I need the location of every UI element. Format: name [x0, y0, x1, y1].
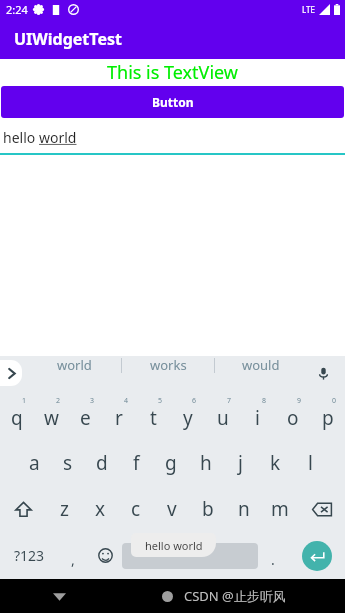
- button[interactable]: g: [153, 439, 188, 486]
- staticText: world: [57, 356, 92, 374]
- button[interactable]: 8: [240, 393, 275, 439]
- staticText: s: [63, 450, 73, 476]
- staticText: k: [270, 450, 281, 476]
- button[interactable]: f: [119, 439, 153, 486]
- staticText: Button: [152, 94, 194, 110]
- button[interactable]: 2: [34, 393, 68, 439]
- staticText: z: [60, 496, 69, 522]
- button[interactable]: world: [28, 356, 121, 374]
- staticText: 5: [158, 396, 163, 406]
- button[interactable]: z: [46, 486, 82, 532]
- staticText: i: [255, 405, 260, 431]
- staticText: f: [133, 450, 140, 476]
- staticText: x: [95, 496, 106, 522]
- button[interactable]: 1: [0, 393, 34, 439]
- staticText: n: [238, 496, 250, 522]
- staticText: d: [96, 450, 108, 476]
- button[interactable]: 9: [275, 393, 310, 439]
- button[interactable]: .: [258, 532, 288, 579]
- staticText: e: [80, 405, 91, 431]
- button[interactable]: h: [188, 439, 223, 486]
- staticText: 7: [227, 396, 232, 406]
- staticText: q: [11, 405, 23, 431]
- staticText: r: [115, 405, 123, 431]
- staticText: 2:24: [6, 2, 28, 17]
- staticText: a: [29, 450, 40, 476]
- button[interactable]: 7: [205, 393, 240, 439]
- button[interactable]: x: [82, 486, 118, 532]
- staticText: .: [271, 550, 275, 569]
- button[interactable]: j: [223, 439, 258, 486]
- button[interactable]: l: [293, 439, 328, 486]
- button[interactable]: s: [51, 439, 85, 486]
- button[interactable]: Backspace: [298, 486, 345, 532]
- staticText: ,: [71, 550, 75, 569]
- staticText: 9: [297, 396, 302, 406]
- staticText: 0: [332, 396, 337, 406]
- staticText: UIWidgetTest: [14, 28, 122, 50]
- staticText: v: [167, 496, 177, 522]
- staticText: w: [44, 405, 59, 431]
- button[interactable]: 3: [68, 393, 102, 439]
- button[interactable]: hello: [0, 118, 345, 155]
- staticText: b: [202, 496, 214, 522]
- staticText: h: [200, 450, 212, 476]
- staticText: 2: [56, 396, 61, 406]
- staticText: LTE: [302, 4, 315, 15]
- staticText: g: [165, 450, 177, 476]
- button[interactable]: Emoji: [88, 532, 122, 579]
- staticText: c: [131, 496, 141, 522]
- staticText: CSDN @止步听风: [184, 587, 286, 605]
- staticText: works: [150, 356, 187, 374]
- button[interactable]: k: [258, 439, 293, 486]
- staticText: y: [183, 405, 193, 431]
- button[interactable]: Voice input: [312, 362, 334, 384]
- button[interactable]: v: [154, 486, 190, 532]
- staticText: 4: [124, 396, 129, 406]
- button[interactable]: Home: [156, 585, 178, 607]
- button[interactable]: Enter: [288, 532, 345, 579]
- button[interactable]: c: [118, 486, 154, 532]
- button[interactable]: Button: [1, 86, 344, 118]
- button[interactable]: would: [215, 356, 307, 374]
- button[interactable]: d: [85, 439, 119, 486]
- staticText: hello world: [145, 538, 203, 553]
- button[interactable]: 4: [102, 393, 136, 439]
- button[interactable]: ?123: [0, 532, 58, 579]
- staticText: 8: [262, 396, 267, 406]
- button[interactable]: m: [262, 486, 298, 532]
- staticText: 3: [90, 396, 95, 406]
- staticText: l: [308, 450, 313, 476]
- staticText: j: [238, 450, 243, 476]
- button[interactable]: b: [190, 486, 226, 532]
- staticText: world: [39, 128, 77, 147]
- button[interactable]: Back: [46, 583, 72, 609]
- staticText: 6: [192, 396, 197, 406]
- staticText: o: [287, 405, 299, 431]
- staticText: m: [271, 496, 289, 522]
- button[interactable]: ,: [58, 532, 88, 579]
- button[interactable]: 0: [310, 393, 345, 439]
- button[interactable]: 5: [136, 393, 170, 439]
- staticText: t: [150, 405, 157, 431]
- staticText: hello: [3, 128, 39, 147]
- button[interactable]: 6: [170, 393, 205, 439]
- staticText: ?123: [14, 546, 45, 565]
- staticText: p: [322, 405, 334, 431]
- staticText: u: [217, 405, 229, 431]
- staticText: 1: [22, 396, 27, 406]
- button[interactable]: [122, 532, 258, 579]
- staticText: would: [242, 356, 280, 374]
- button[interactable]: Expand suggestions: [0, 360, 22, 386]
- button[interactable]: n: [226, 486, 262, 532]
- button[interactable]: Shift: [0, 486, 46, 532]
- button[interactable]: a: [17, 439, 51, 486]
- button[interactable]: works: [122, 356, 214, 374]
- staticText: This is TextView: [107, 60, 238, 85]
